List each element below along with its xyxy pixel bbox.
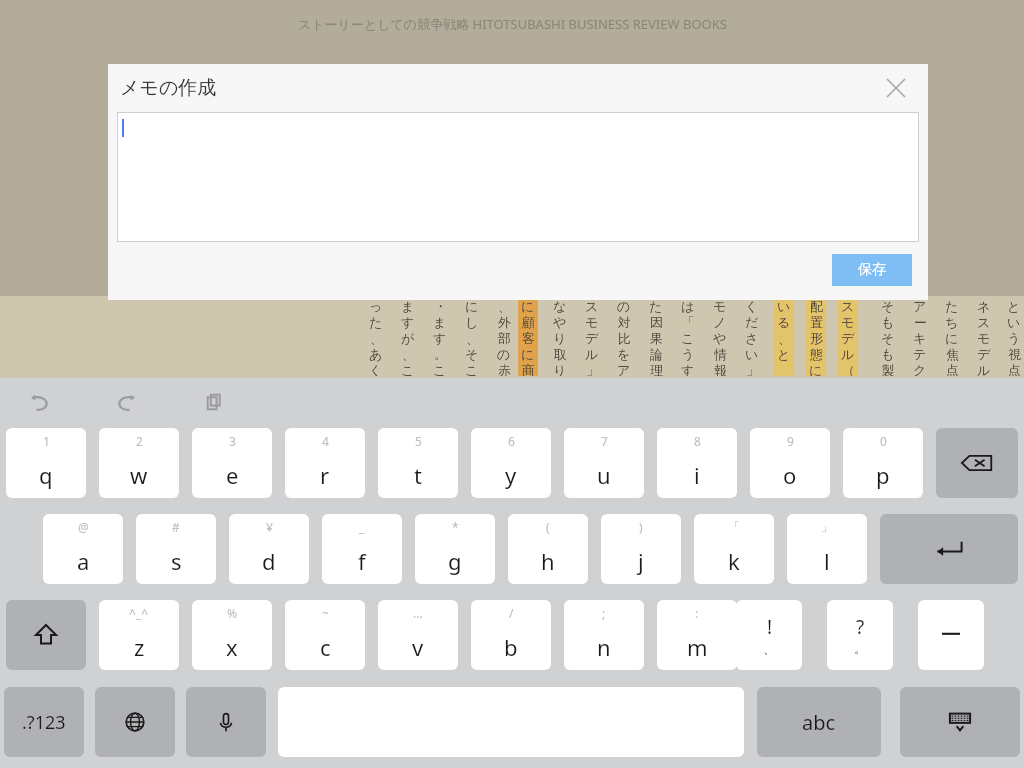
- staticText: 1: [43, 433, 50, 449]
- staticText: h: [541, 546, 555, 576]
- button[interactable]: 1: [6, 428, 86, 498]
- staticText: 、: [498, 298, 511, 314]
- button[interactable]: 2: [99, 428, 179, 498]
- staticText: し: [465, 314, 479, 330]
- button[interactable]: 7: [564, 428, 644, 498]
- button[interactable]: 」: [787, 514, 867, 584]
- button[interactable]: 4: [285, 428, 365, 498]
- staticText: こ: [401, 362, 415, 376]
- staticText: (: [546, 519, 550, 535]
- button[interactable]: %: [192, 600, 272, 670]
- staticText: 7: [601, 433, 608, 449]
- button[interactable]: .?123: [4, 687, 84, 757]
- button[interactable]: 閉じる: [878, 70, 914, 106]
- staticText: （: [842, 362, 855, 376]
- button[interactable]: ;: [564, 600, 644, 670]
- button[interactable]: *: [415, 514, 495, 584]
- button[interactable]: 「: [694, 514, 774, 584]
- staticText: そ: [881, 330, 895, 346]
- button[interactable]: 音声入力: [186, 687, 266, 757]
- staticText: 取: [554, 346, 567, 362]
- staticText: i: [694, 460, 700, 490]
- staticText: 5: [415, 433, 422, 449]
- staticText: モ: [713, 298, 727, 314]
- staticText: ス: [977, 314, 991, 330]
- button[interactable]: 削除: [936, 428, 1018, 498]
- button[interactable]: 8: [657, 428, 737, 498]
- staticText: そ: [465, 346, 479, 362]
- staticText: !: [767, 614, 773, 640]
- button[interactable]: 言語切替: [95, 687, 175, 757]
- staticText: /: [509, 605, 514, 621]
- button[interactable]: ¥: [229, 514, 309, 584]
- button[interactable]: abc: [757, 687, 881, 757]
- staticText: 4: [322, 433, 329, 449]
- staticText: も: [881, 346, 895, 362]
- staticText: に: [809, 362, 823, 376]
- staticText: く: [745, 298, 759, 314]
- staticText: ノ: [713, 314, 727, 330]
- staticText: ア: [617, 362, 631, 376]
- staticText: 「: [728, 519, 740, 534]
- button[interactable]: やり直す: [110, 385, 144, 419]
- staticText: に: [521, 298, 535, 314]
- staticText: に: [945, 330, 959, 346]
- button[interactable]: _: [322, 514, 402, 584]
- button[interactable]: [118, 113, 918, 241]
- staticText: w: [130, 460, 148, 490]
- staticText: い: [1007, 314, 1021, 330]
- button[interactable]: 9: [750, 428, 830, 498]
- button[interactable]: (: [508, 514, 588, 584]
- button[interactable]: 元に戻す: [22, 385, 56, 419]
- button[interactable]: コピー: [198, 385, 232, 419]
- staticText: c: [320, 632, 331, 662]
- button[interactable]: 改行: [880, 514, 1018, 584]
- staticText: 商: [522, 362, 535, 376]
- button[interactable]: 5: [378, 428, 458, 498]
- staticText: 情: [714, 346, 727, 362]
- staticText: 客: [522, 330, 535, 346]
- staticText: り: [553, 330, 567, 346]
- staticText: こ: [465, 362, 479, 376]
- button[interactable]: #: [136, 514, 216, 584]
- staticText: も: [881, 314, 895, 330]
- button[interactable]: @: [43, 514, 123, 584]
- button[interactable]: ...: [378, 600, 458, 670]
- button[interactable]: 0: [843, 428, 923, 498]
- button[interactable]: !: [736, 600, 802, 670]
- staticText: だ: [745, 314, 759, 330]
- staticText: ー: [940, 621, 962, 649]
- button[interactable]: 3: [192, 428, 272, 498]
- button[interactable]: ): [601, 514, 681, 584]
- button[interactable]: キーボードを閉じる: [900, 687, 1020, 757]
- staticText: 形: [810, 330, 823, 346]
- staticText: 」: [586, 362, 599, 376]
- button[interactable]: ー: [918, 600, 984, 670]
- staticText: デ: [977, 346, 991, 362]
- staticText: 0: [880, 433, 887, 449]
- button[interactable]: /: [471, 600, 551, 670]
- staticText: ま: [433, 314, 447, 330]
- button[interactable]: ^_^: [99, 600, 179, 670]
- staticText: ~: [322, 605, 329, 621]
- button[interactable]: ~: [285, 600, 365, 670]
- staticText: の: [497, 346, 511, 362]
- staticText: f: [358, 546, 366, 576]
- staticText: た: [945, 298, 959, 314]
- staticText: ?: [856, 614, 865, 640]
- button[interactable]: シフト: [6, 600, 86, 670]
- button[interactable]: 保存: [832, 254, 912, 286]
- button[interactable]: 6: [471, 428, 551, 498]
- staticText: デ: [585, 330, 599, 346]
- staticText: う: [1007, 330, 1021, 346]
- staticText: キ: [913, 330, 927, 346]
- staticText: q: [39, 460, 53, 490]
- staticText: 」: [746, 362, 759, 376]
- staticText: 点: [1008, 362, 1021, 376]
- staticText: そ: [881, 298, 895, 314]
- button[interactable]: ?: [827, 600, 893, 670]
- staticText: の: [617, 298, 631, 314]
- staticText: ル: [977, 362, 991, 376]
- button[interactable]: :: [657, 600, 737, 670]
